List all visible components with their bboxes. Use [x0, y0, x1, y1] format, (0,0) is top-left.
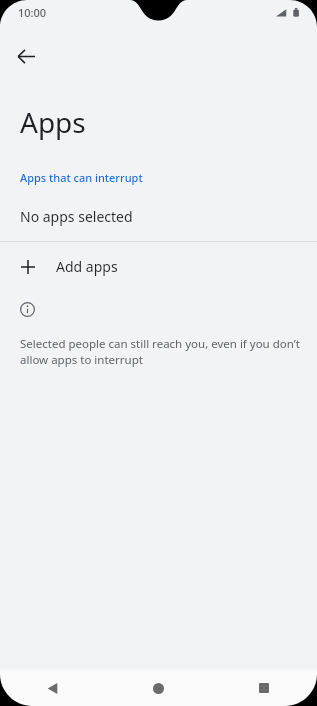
button[interactable]: No apps selected: [0, 202, 317, 231]
button[interactable]: Add apps: [0, 242, 317, 291]
button[interactable]: Back: [0, 670, 105, 706]
staticText: Selected people can still reach you, eve…: [20, 336, 300, 367]
staticText: Apps that can interrupt: [20, 170, 143, 185]
staticText: No apps selected: [20, 207, 133, 226]
button[interactable]: Recent apps: [211, 670, 317, 706]
button[interactable]: Home: [105, 670, 211, 706]
staticText: 10:00: [18, 5, 47, 20]
button[interactable]: Navigate up: [5, 35, 48, 78]
staticText: Add apps: [56, 257, 118, 276]
staticText: Apps: [20, 103, 86, 141]
